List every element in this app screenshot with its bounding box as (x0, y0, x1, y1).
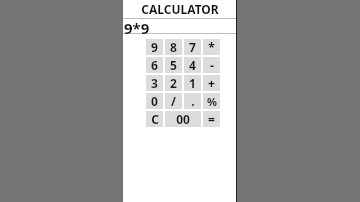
button[interactable]: 00 (165, 111, 201, 127)
staticText: + (208, 75, 215, 91)
staticText: / (171, 93, 176, 109)
button[interactable]: 9 (146, 39, 163, 55)
button[interactable]: 6 (146, 57, 163, 73)
staticText: CALCULATOR (141, 1, 219, 17)
staticText: . (191, 93, 195, 109)
staticText: 0 (151, 93, 158, 109)
button[interactable]: 1 (184, 75, 201, 91)
button[interactable]: / (165, 93, 182, 109)
button[interactable]: 9*9 (123, 18, 237, 34)
button[interactable]: 5 (165, 57, 182, 73)
button[interactable]: 4 (184, 57, 201, 73)
button[interactable]: * (203, 39, 220, 55)
staticText: C (151, 111, 159, 127)
staticText: 9 (151, 39, 158, 55)
button[interactable]: C (146, 111, 163, 127)
button[interactable]: - (203, 57, 220, 73)
staticText: - (210, 57, 214, 73)
staticText: 3 (151, 75, 158, 91)
button[interactable]: . (184, 93, 201, 109)
staticText: 4 (189, 57, 196, 73)
button[interactable]: 2 (165, 75, 182, 91)
button[interactable]: + (203, 75, 220, 91)
staticText: 00 (176, 111, 190, 127)
button[interactable]: CALCULATOR (123, 0, 237, 18)
staticText: = (208, 111, 215, 127)
staticText: 6 (151, 57, 158, 73)
button[interactable]: 8 (165, 39, 182, 55)
staticText: 7 (189, 39, 196, 55)
staticText: % (207, 94, 217, 109)
staticText: 2 (170, 75, 177, 91)
button[interactable]: 7 (184, 39, 201, 55)
button[interactable]: 0 (146, 93, 163, 109)
staticText: 1 (189, 75, 196, 91)
staticText: 8 (170, 39, 177, 55)
staticText: 9*9 (124, 18, 150, 34)
button[interactable]: = (203, 111, 220, 127)
button[interactable]: 3 (146, 75, 163, 91)
staticText: 5 (170, 57, 177, 73)
staticText: * (208, 39, 215, 55)
button[interactable]: % (203, 93, 220, 109)
